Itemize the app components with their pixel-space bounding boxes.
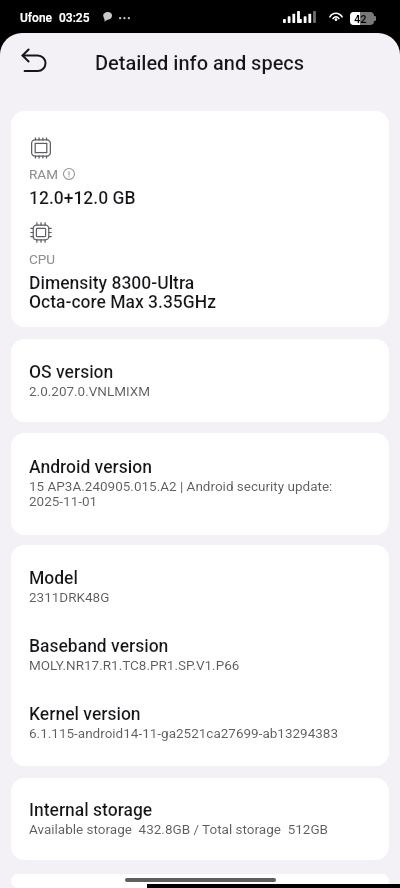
staticText: 6.1.115-android14-11-ga2521ca27699-ab132… xyxy=(29,725,339,741)
staticText: Available storage 432.8GB / Total storag… xyxy=(29,821,329,837)
staticText: Model xyxy=(29,568,78,589)
button[interactable]: Internal storage xyxy=(11,778,389,860)
staticText: CPU xyxy=(29,251,56,267)
button[interactable] xyxy=(11,874,389,888)
staticText: Dimensity 8300-Ultra Octa-core Max 3.35G… xyxy=(29,273,216,312)
staticText: 42 xyxy=(354,13,367,26)
button[interactable]: Back xyxy=(13,42,55,84)
staticText: 2.0.207.0.VNLMIXM xyxy=(29,383,151,399)
staticText: Ufone xyxy=(20,11,53,25)
staticText: 15 AP3A.240905.015.A2 | Android security… xyxy=(29,478,371,510)
staticText: RAM xyxy=(29,166,58,182)
staticText: 2311DRK48G xyxy=(29,589,110,605)
staticText: Kernel version xyxy=(29,704,141,725)
button[interactable]: Model xyxy=(11,545,389,766)
staticText: Internal storage xyxy=(29,800,153,821)
staticText: 12.0+12.0 GB xyxy=(29,188,136,209)
staticText: MOLY.NR17.R1.TC8.PR1.SP.V1.P66 xyxy=(29,657,240,673)
button[interactable]: OS version xyxy=(11,339,389,422)
staticText: OS version xyxy=(29,362,114,383)
staticText: Detailed info and specs xyxy=(95,51,305,74)
staticText: Baseband version xyxy=(29,636,169,657)
staticText: 03:25 xyxy=(59,11,90,25)
staticText: Android version xyxy=(29,457,152,478)
button[interactable]: Android version xyxy=(11,433,389,535)
button[interactable]: RAM xyxy=(11,111,389,327)
